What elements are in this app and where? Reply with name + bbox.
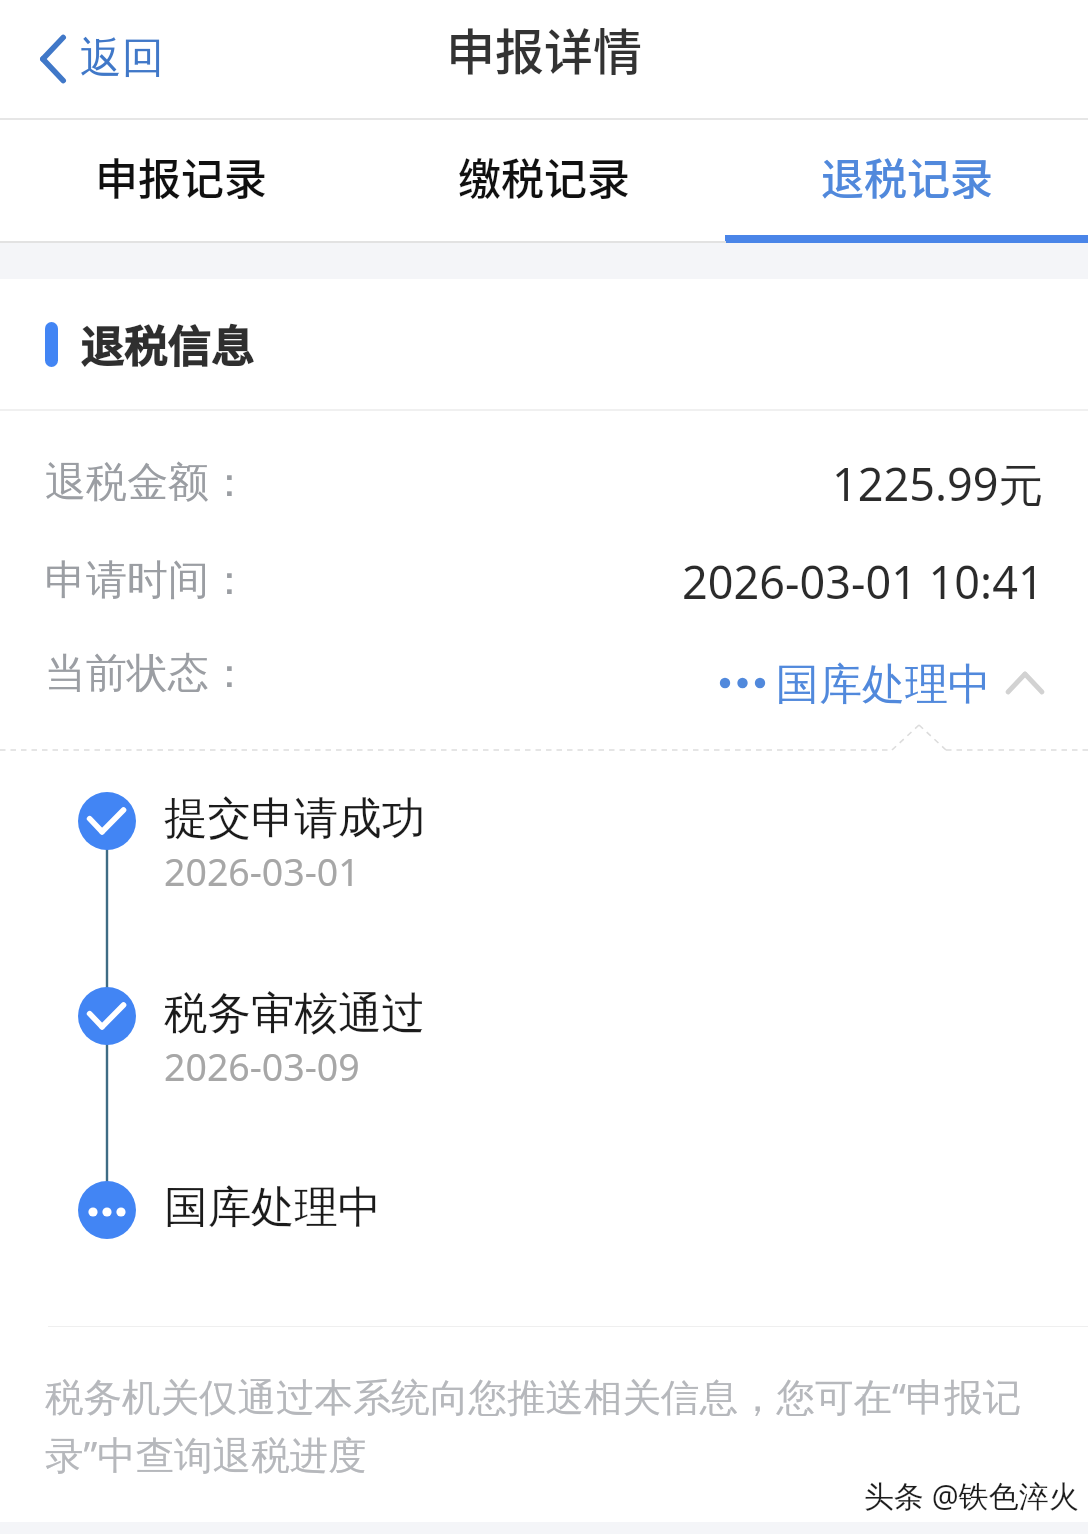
button[interactable]: 国库处理中 <box>60 1170 560 1288</box>
staticText: 头条 @铁色淬火 <box>864 1475 1079 1516</box>
staticText: 2026-03-01 <box>164 846 360 897</box>
button[interactable]: 退税记录 <box>725 119 1088 243</box>
button[interactable]: 缴税记录 <box>362 119 725 243</box>
other: 提交申请成功 <box>78 792 136 850</box>
button[interactable]: 国库处理中 <box>712 625 1057 723</box>
staticText: 申报详情 <box>446 13 643 84</box>
staticText: 退税信息 <box>80 313 254 376</box>
staticText: 当前状态： <box>45 648 250 700</box>
staticText: 提交申请成功 <box>164 791 425 846</box>
staticText: 税务审核通过 <box>164 986 425 1041</box>
other: 税务审核通过 <box>78 987 136 1045</box>
staticText: 返回 <box>80 32 164 85</box>
staticText: 国库处理中 <box>776 658 991 712</box>
staticText: 国库处理中 <box>164 1180 382 1235</box>
other: Collapse <box>1005 670 1045 696</box>
staticText: 缴税记录 <box>458 145 630 207</box>
other: 国库处理中 <box>78 1181 136 1239</box>
button[interactable]: 申报记录 <box>0 119 362 243</box>
button[interactable]: 税务审核通过 <box>60 976 560 1094</box>
staticText: 2026-03-01 10:41 <box>682 551 1044 612</box>
button[interactable]: 提交申请成功 <box>60 781 560 899</box>
staticText: 申请时间： <box>45 555 250 607</box>
staticText: 退税记录 <box>821 145 993 207</box>
staticText: 1225.99元 <box>832 453 1044 514</box>
staticText: 申报记录 <box>95 145 267 207</box>
staticText: 退税金额： <box>45 457 250 509</box>
staticText: 2026-03-09 <box>164 1041 360 1092</box>
staticText: 税务机关仅通过本系统向您推送相关信息，您可在“申报记录”中查询退税进度 <box>45 1370 1050 1480</box>
button[interactable]: 返回 <box>26 22 172 96</box>
